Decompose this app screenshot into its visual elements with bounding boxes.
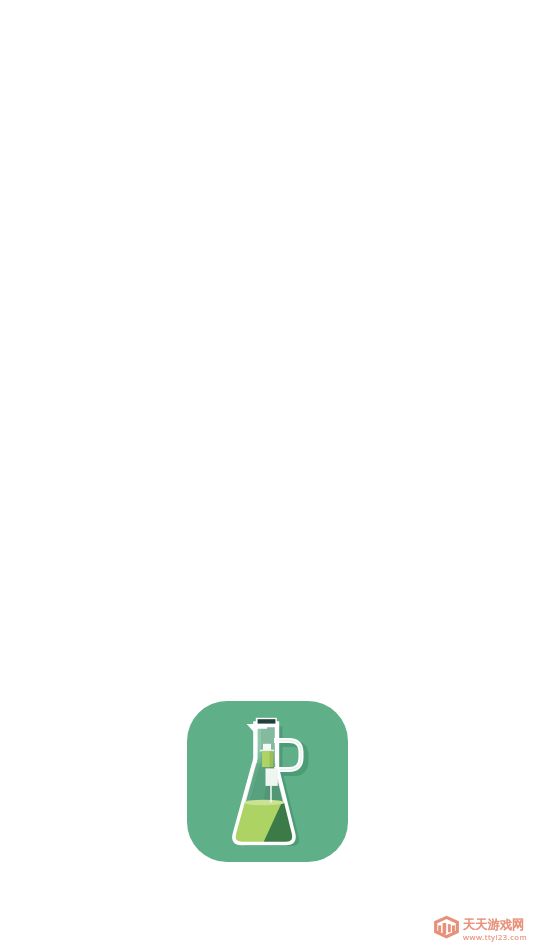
staticText: www.ttyl23.com <box>463 932 528 942</box>
button[interactable]: Watermark <box>435 916 528 941</box>
button[interactable]: App icon <box>187 701 348 862</box>
staticText: 天天游戏网 <box>463 917 524 932</box>
